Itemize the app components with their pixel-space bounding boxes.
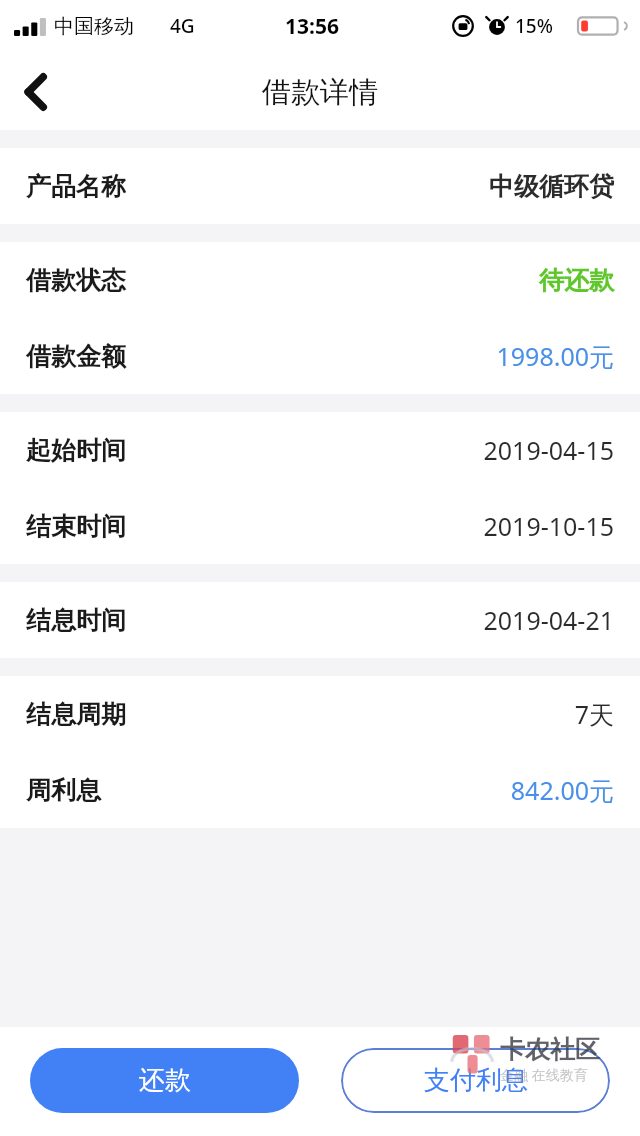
staticText: 支付利息	[424, 1064, 528, 1097]
staticText: 15%	[515, 13, 553, 39]
staticText: 起始时间	[26, 435, 126, 466]
staticText: 待还款	[539, 265, 614, 296]
staticText: 借款详情	[262, 74, 378, 111]
staticText: 产品名称	[26, 171, 126, 202]
staticText: 借款状态	[26, 265, 126, 296]
button[interactable]: 起始时间	[0, 412, 640, 488]
staticText: 结息周期	[26, 699, 126, 730]
button[interactable]: 还款	[30, 1048, 299, 1113]
staticText: 结息时间	[26, 605, 126, 636]
button[interactable]: 借款状态	[0, 242, 640, 318]
staticText: 金融 在线教育	[500, 1065, 588, 1084]
staticText: 结束时间	[26, 511, 126, 542]
staticText: 7天	[574, 697, 614, 731]
button[interactable]: 结束时间	[0, 488, 640, 564]
button[interactable]: Back	[0, 56, 72, 128]
staticText: 借款金额	[26, 341, 126, 372]
staticText: 周利息	[26, 775, 101, 806]
staticText: 中级循环贷	[489, 171, 614, 202]
button[interactable]: 借款金额	[0, 318, 640, 394]
staticText: 1998.00元	[496, 339, 614, 373]
staticText: 4G	[170, 13, 195, 39]
button[interactable]: 结息时间	[0, 582, 640, 658]
staticText: 2019-04-15	[483, 433, 614, 467]
button[interactable]: 支付利息	[341, 1048, 610, 1113]
button[interactable]: 结息周期	[0, 676, 640, 752]
staticText: 2019-10-15	[483, 509, 614, 543]
staticText: 842.00元	[510, 773, 614, 807]
staticText: 13:56	[285, 12, 339, 41]
staticText: 卡农社区	[500, 1034, 600, 1065]
button[interactable]: 产品名称	[0, 148, 640, 224]
staticText: 2019-04-21	[483, 603, 614, 637]
staticText: 中国移动	[54, 14, 134, 39]
button[interactable]: 周利息	[0, 752, 640, 828]
staticText: 还款	[139, 1064, 191, 1097]
